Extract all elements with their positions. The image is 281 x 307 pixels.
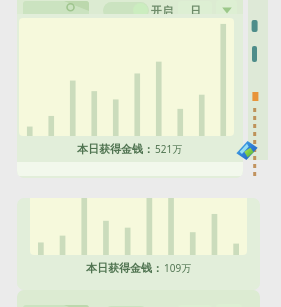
button[interactable]: 日 [178,1,212,20]
staticText: 109万 [164,261,192,275]
button[interactable]: 本日获得金钱： [17,198,260,290]
staticText: 开启 [151,4,173,18]
button[interactable] [23,305,89,307]
staticText: 本日获得金钱： [86,261,163,275]
button[interactable]: Gem [233,136,261,164]
button[interactable]: Toggle [103,306,149,307]
staticText: 本日获得金钱： [77,142,154,156]
button[interactable]: Dropdown [216,0,237,20]
button[interactable]: Toggle [103,2,149,19]
staticText: 521万 [155,142,183,156]
staticText: 日 [190,4,201,18]
button[interactable]: 本日获得金钱： [17,14,243,178]
button[interactable] [23,1,89,19]
